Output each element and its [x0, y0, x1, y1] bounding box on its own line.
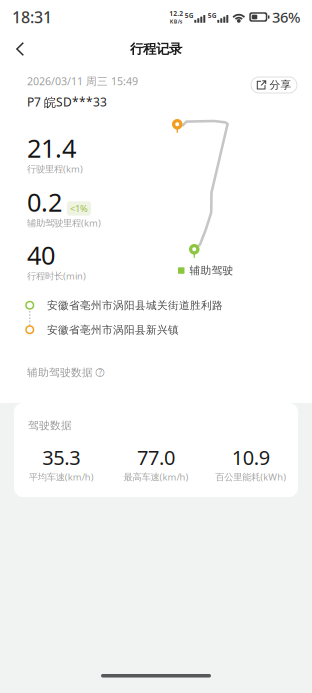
- staticText: ?: [98, 367, 101, 378]
- staticText: 36%: [272, 7, 300, 27]
- staticText: 分享: [269, 78, 291, 91]
- staticText: P7 皖SD***33: [27, 94, 107, 110]
- staticText: 2026/03/11 周三 15:49: [27, 74, 138, 88]
- button[interactable]: 分享: [251, 77, 297, 93]
- staticText: 安徽省亳州市涡阳县新兴镇: [47, 323, 179, 337]
- staticText: 安徽省亳州市涡阳县城关街道胜利路: [47, 299, 223, 312]
- staticText: 行驶里程(km): [27, 163, 83, 175]
- staticText: 21.4: [27, 131, 76, 165]
- staticText: 5G: [185, 11, 194, 20]
- staticText: 18:31: [12, 6, 52, 28]
- staticText: 0.2: [27, 185, 62, 219]
- staticText: 平均车速(km/h): [29, 471, 94, 483]
- staticText: 12.2: [169, 9, 183, 18]
- staticText: 驾驶数据: [28, 419, 72, 432]
- staticText: 辅助驾驶: [189, 264, 233, 277]
- staticText: <1%: [70, 202, 88, 215]
- staticText: 40: [27, 238, 55, 272]
- staticText: 5G: [208, 11, 217, 20]
- staticText: 10.9: [232, 444, 270, 471]
- staticText: 最高车速(km/h): [123, 471, 188, 483]
- staticText: 百公里能耗(kWh): [215, 471, 286, 483]
- staticText: 35.3: [42, 444, 80, 471]
- staticText: 行程时长(min): [27, 270, 86, 282]
- staticText: 辅助驾驶里程(km): [27, 217, 101, 229]
- staticText: 77.0: [137, 444, 175, 471]
- button[interactable]: 返回: [0, 34, 40, 64]
- staticText: 行程记录: [130, 41, 182, 57]
- staticText: 辅助驾驶数据: [27, 366, 93, 379]
- staticText: KB/s: [170, 18, 183, 25]
